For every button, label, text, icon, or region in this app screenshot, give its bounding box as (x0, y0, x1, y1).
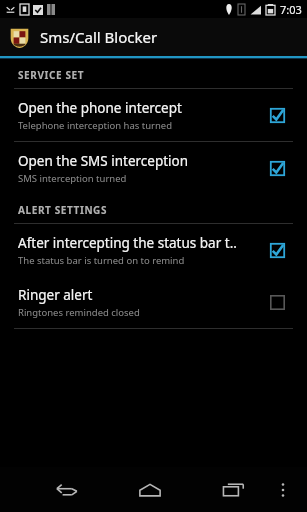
button[interactable]: Enabled (263, 101, 291, 129)
button[interactable]: Ringer alert (0, 276, 307, 328)
button[interactable]: Back (46, 469, 88, 511)
staticText: Ringer alert (18, 286, 93, 304)
staticText: Telephone interception has turned (18, 119, 173, 132)
button[interactable]: After intercepting the status bar t.. (0, 224, 307, 276)
button[interactable]: Recent apps (213, 469, 255, 511)
button[interactable]: Open the phone intercept (0, 89, 307, 141)
staticText: SERVICE SET (18, 68, 85, 82)
button[interactable]: Sms/Call Blocker (0, 18, 307, 56)
staticText: SMS interception turned (18, 172, 127, 185)
button[interactable]: More options (269, 476, 297, 504)
button[interactable]: Disabled (263, 288, 291, 316)
button[interactable]: Enabled (263, 236, 291, 264)
staticText: Open the SMS interception (18, 152, 189, 170)
button[interactable]: Enabled (263, 154, 291, 182)
staticText: Open the phone intercept (18, 99, 182, 117)
staticText: 7:03 (280, 2, 302, 17)
staticText: Sms/Call Blocker (40, 27, 158, 47)
staticText: The status bar is turned on to remind (18, 254, 185, 267)
staticText: After intercepting the status bar t.. (18, 234, 237, 252)
button[interactable]: Home (129, 469, 171, 511)
button[interactable]: Open the SMS interception (0, 142, 307, 194)
staticText: ALERT SETTINGS (18, 203, 108, 217)
staticText: Ringtones reminded closed (18, 306, 140, 319)
